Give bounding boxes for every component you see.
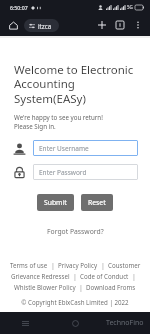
staticText: | <box>48 261 58 269</box>
staticText: Coustomer <box>108 261 141 269</box>
button[interactable]: Reset <box>81 194 113 211</box>
button[interactable]: Terms of use <box>10 261 48 269</box>
staticText: Enter Password <box>39 168 87 177</box>
button[interactable]: More options <box>130 17 146 33</box>
button[interactable]: Home <box>5 17 21 33</box>
button[interactable]: Grievance Redressel <box>11 272 70 280</box>
staticText: | <box>98 261 108 269</box>
button[interactable]: itzcash.com/sso/ <box>24 19 59 32</box>
button[interactable]: Code of Conduct <box>80 272 129 280</box>
staticText: Reset <box>88 198 106 207</box>
staticText: Forgot Password? <box>47 227 104 236</box>
button[interactable]: Whistle Blower Policy <box>14 283 76 291</box>
staticText: | <box>129 272 139 280</box>
button[interactable]: Home <box>50 312 100 334</box>
staticText: itzcash.com/sso/ <box>38 22 54 30</box>
button[interactable]: New tab <box>94 17 110 33</box>
staticText: We're happy to see you return! Please Si… <box>14 113 103 131</box>
button[interactable]: Privacy Policy <box>58 261 98 269</box>
staticText: Grievance Redressel <box>11 272 70 280</box>
button[interactable]: Enter Username <box>33 140 138 156</box>
staticText: Privacy Policy <box>58 261 98 269</box>
staticText: 6:50:07 <box>10 4 28 11</box>
button[interactable]: Forgot Password? <box>41 225 110 238</box>
staticText: Terms of use <box>10 261 48 269</box>
other: Password <box>13 166 26 179</box>
staticText: TechnoFino <box>106 318 144 328</box>
staticText: Download Froms <box>86 283 136 291</box>
button[interactable]: Tab switcher <box>112 17 128 33</box>
staticText: | <box>76 283 86 291</box>
staticText: Code of Conduct <box>80 272 129 280</box>
button[interactable]: Download Froms <box>86 283 136 291</box>
staticText: Submit <box>44 198 67 207</box>
button[interactable]: Back <box>100 312 150 334</box>
staticText: | <box>70 272 80 280</box>
staticText: Enter Username <box>39 144 89 153</box>
staticText: Whistle Blower Policy <box>14 283 76 291</box>
staticText: 5G <box>127 4 133 10</box>
button[interactable]: Recent apps <box>0 312 50 334</box>
staticText: © Copyright EbixCash Limited | 2022 <box>21 298 129 306</box>
button[interactable]: Submit <box>37 194 74 211</box>
other: Username <box>13 142 26 155</box>
button[interactable]: Enter Password <box>33 164 138 180</box>
button[interactable]: Coustomer <box>108 261 141 269</box>
staticText: Welcome to Electronic Accounting System(… <box>14 62 134 107</box>
